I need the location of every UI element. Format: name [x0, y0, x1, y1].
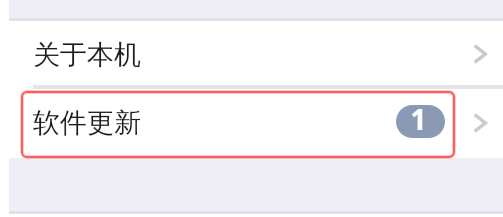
staticText: 关于本机: [33, 38, 141, 72]
button[interactable]: 软件更新: [0, 90, 503, 158]
other: Open: [473, 113, 487, 133]
other: Open: [473, 44, 487, 64]
staticText: 1: [410, 105, 427, 133]
staticText: 软件更新: [33, 106, 141, 140]
button[interactable]: 关于本机: [0, 21, 503, 86]
